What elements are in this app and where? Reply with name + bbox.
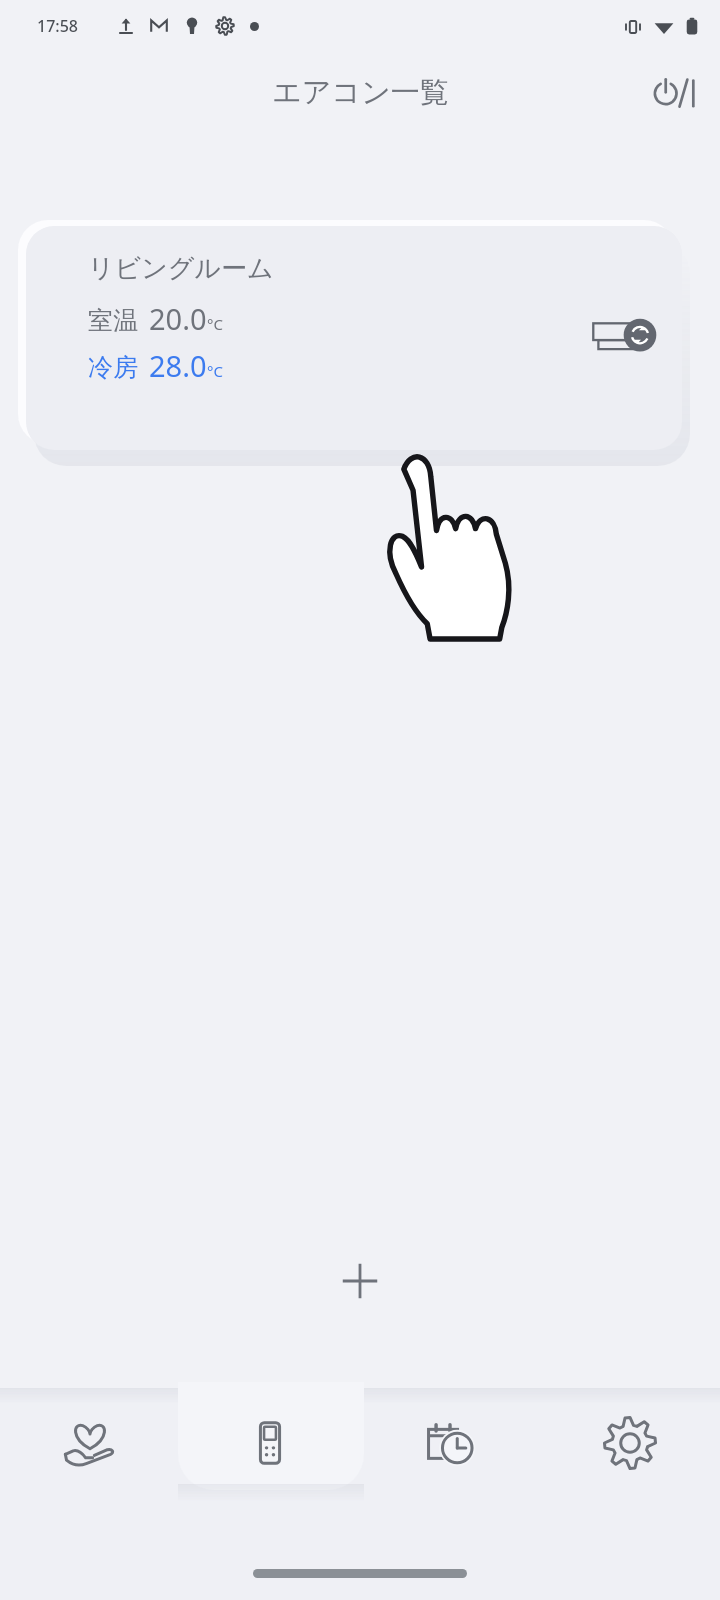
button[interactable]: Power on off (640, 58, 708, 126)
staticText: リビングルーム (88, 252, 274, 285)
other: Add air conditioner (342, 1263, 378, 1299)
staticText: °C (207, 361, 223, 381)
staticText: 冷房 (88, 352, 138, 383)
staticText: 室温 (88, 305, 138, 336)
button[interactable]: Add air conditioner (0, 1252, 720, 1310)
staticText: 20.0 (149, 299, 207, 338)
button[interactable]: リビングルーム (26, 226, 682, 450)
staticText: 28.0 (149, 346, 207, 385)
staticText: エアコン一覧 (272, 74, 449, 111)
staticText: °C (207, 314, 223, 334)
button[interactable]: Remote control (180, 1390, 360, 1496)
button[interactable]: Settings (540, 1390, 720, 1496)
button[interactable]: Schedule (360, 1390, 540, 1496)
staticText: 17:58 (37, 15, 78, 37)
button[interactable]: Favorites (0, 1390, 180, 1496)
